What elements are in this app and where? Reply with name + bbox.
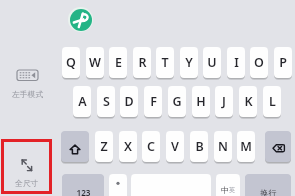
staticText: A xyxy=(78,93,87,110)
button[interactable]: K xyxy=(239,86,257,117)
button[interactable]: Q xyxy=(62,47,80,78)
staticText: D xyxy=(124,93,134,110)
staticText: 全尺寸 xyxy=(15,178,39,188)
staticText: B xyxy=(195,138,204,155)
staticText: N xyxy=(218,138,228,155)
staticText: 123 xyxy=(76,187,91,196)
staticText: 中 xyxy=(221,185,229,195)
staticText: K xyxy=(244,93,253,110)
button[interactable]: M xyxy=(237,131,255,162)
staticText: R xyxy=(138,54,147,71)
button[interactable]: C xyxy=(142,131,160,162)
button[interactable] xyxy=(265,131,291,162)
staticText: Q xyxy=(66,54,76,71)
staticText: W xyxy=(89,54,101,71)
button[interactable]: I xyxy=(227,47,245,78)
staticText: E xyxy=(115,54,122,71)
staticText: M xyxy=(240,138,252,155)
button[interactable]: 123 xyxy=(62,174,104,196)
button[interactable]: Left hand mode xyxy=(6,64,48,86)
button[interactable]: O xyxy=(250,47,268,78)
staticText: F xyxy=(150,93,157,110)
staticText: Z xyxy=(100,138,108,155)
button[interactable]: Y xyxy=(180,47,198,78)
button[interactable]: E xyxy=(109,47,127,78)
staticText: J xyxy=(222,93,226,110)
button[interactable]: App logo xyxy=(68,7,93,32)
button[interactable]: F xyxy=(144,86,162,117)
staticText: I xyxy=(234,54,239,71)
button[interactable]: Full size keyboard xyxy=(4,142,49,191)
button[interactable]: P xyxy=(274,47,292,78)
button[interactable]: S xyxy=(97,86,115,117)
staticText: G xyxy=(172,93,182,110)
staticText: 左手模式 xyxy=(12,89,44,99)
button[interactable]: J xyxy=(215,86,233,117)
button[interactable]: X xyxy=(119,131,137,162)
staticText: H xyxy=(196,93,206,110)
button[interactable]: N xyxy=(214,131,232,162)
staticText: V xyxy=(171,138,179,155)
button[interactable]: R xyxy=(133,47,151,78)
staticText: 换行 xyxy=(260,188,277,196)
button[interactable]: 换行 xyxy=(245,174,291,196)
button[interactable]: A xyxy=(73,86,91,117)
button[interactable]: T xyxy=(156,47,174,78)
button[interactable]: L xyxy=(263,86,281,117)
button[interactable] xyxy=(61,131,89,162)
staticText: Y xyxy=(185,54,193,71)
button[interactable]: Z xyxy=(95,131,113,162)
staticText: S xyxy=(103,93,110,110)
button[interactable] xyxy=(109,174,127,196)
staticText: O xyxy=(254,54,264,71)
staticText: C xyxy=(147,138,155,155)
button[interactable]: W xyxy=(86,47,104,78)
staticText: T xyxy=(161,54,169,71)
staticText: P xyxy=(279,54,287,71)
button[interactable]: B xyxy=(190,131,208,162)
staticText: 英 xyxy=(229,186,235,194)
staticText: L xyxy=(269,93,276,110)
button[interactable]: H xyxy=(192,86,210,117)
staticText: U xyxy=(207,54,217,71)
button[interactable]: G xyxy=(168,86,186,117)
button[interactable]: 中 xyxy=(216,174,240,196)
button[interactable]: U xyxy=(203,47,221,78)
button[interactable]: D xyxy=(120,86,138,117)
button[interactable]: V xyxy=(166,131,184,162)
staticText: X xyxy=(124,138,132,155)
